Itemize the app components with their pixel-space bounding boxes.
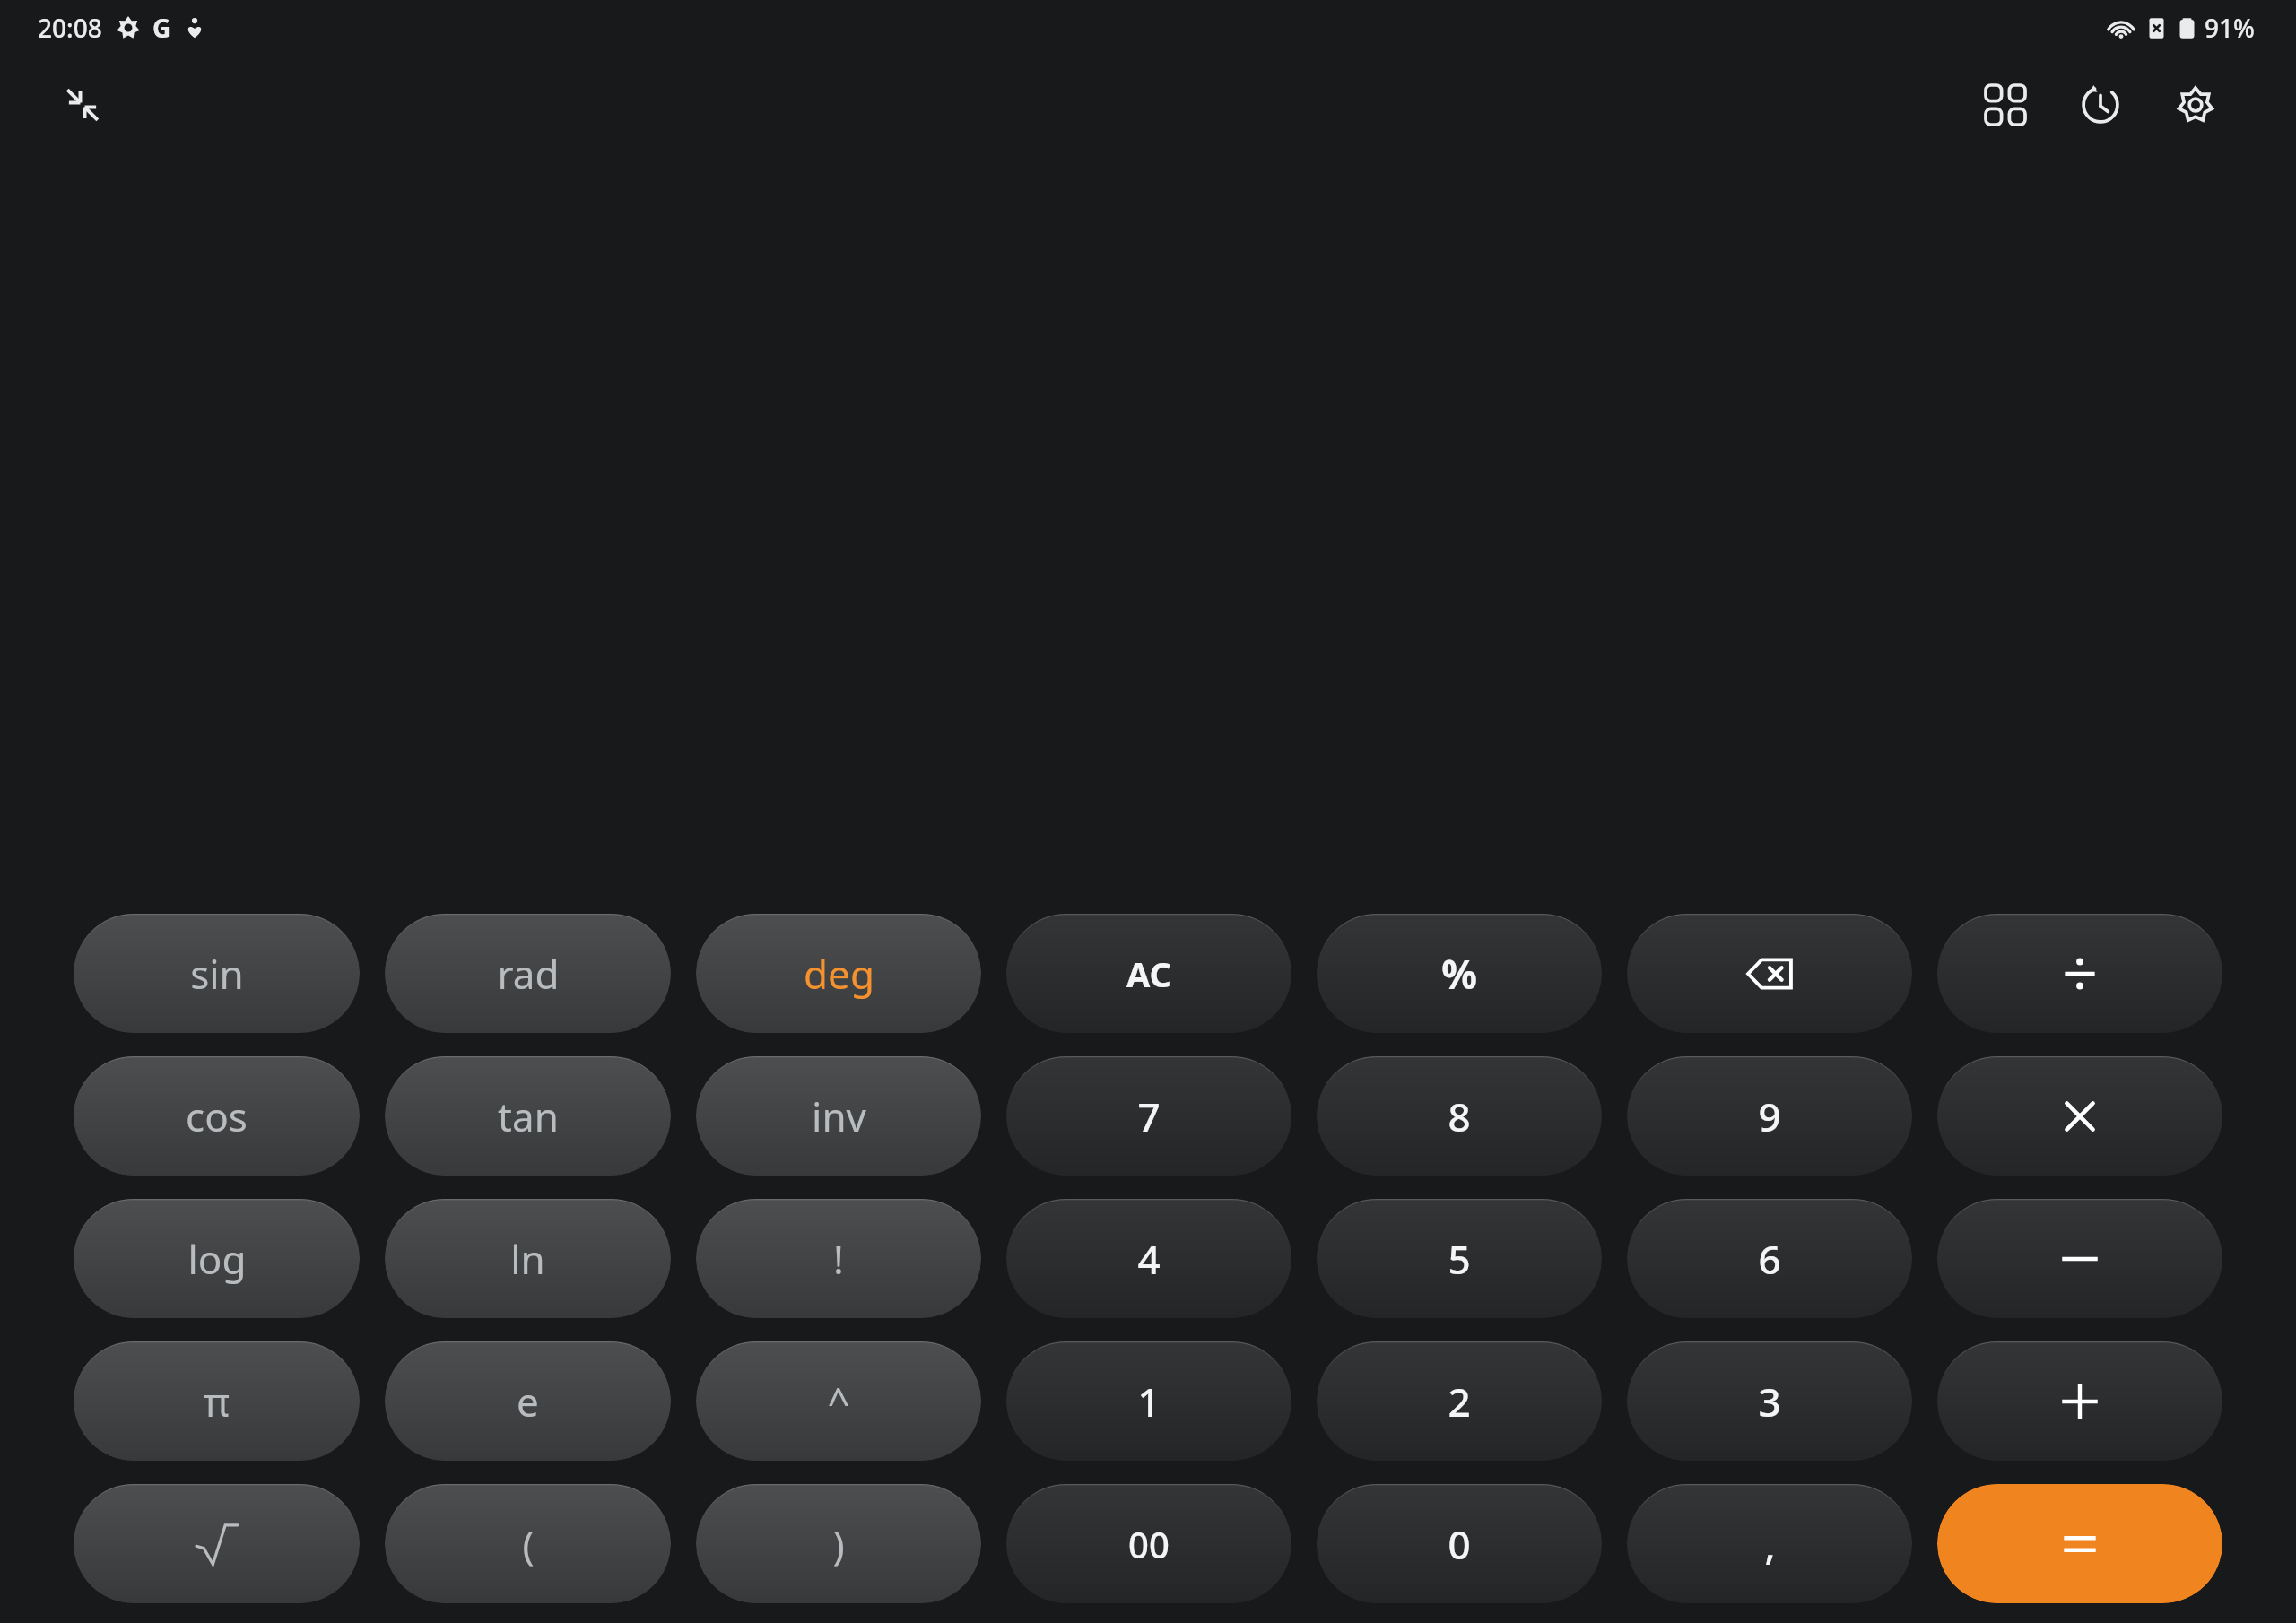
button[interactable]: ( [385,1484,671,1603]
button[interactable]: e [385,1341,671,1461]
button[interactable]: sin [74,914,360,1033]
button[interactable]: 7 [1006,1056,1291,1176]
button[interactable]: Scientific keypad [1970,69,2041,141]
staticText: ln [510,1232,545,1286]
staticText: ^ [827,1375,850,1428]
staticText: 4 [1137,1232,1161,1286]
staticText: 20:08 [38,11,102,45]
staticText: deg [804,947,874,1001]
button[interactable]: rad [385,914,671,1033]
button[interactable]: 2 [1317,1341,1602,1461]
staticText: cos [186,1089,248,1143]
staticText: log [187,1232,247,1286]
button[interactable]: Divide [1937,914,2222,1033]
button[interactable]: % [1317,914,1602,1033]
button[interactable]: Plus [1937,1341,2222,1461]
button[interactable]: , [1627,1484,1912,1603]
staticText: tan [498,1089,559,1143]
staticText: G [152,11,171,45]
staticText: 00 [1128,1520,1170,1568]
staticText: ) [832,1517,845,1571]
button[interactable]: Square root [74,1484,360,1603]
button[interactable]: 4 [1006,1199,1291,1318]
button[interactable]: Settings [2160,69,2231,141]
button[interactable]: 9 [1627,1056,1912,1176]
staticText: rad [497,947,560,1001]
button[interactable]: 0 [1317,1484,1602,1603]
staticText: 0 [1448,1517,1471,1571]
button[interactable]: log [74,1199,360,1318]
staticText: 1 [1137,1375,1161,1428]
button[interactable]: deg [696,914,981,1033]
button[interactable]: inv [696,1056,981,1176]
button[interactable]: 1 [1006,1341,1291,1461]
staticText: 9 [1758,1089,1781,1143]
staticText: 5 [1448,1232,1471,1286]
button[interactable]: Backspace [1627,914,1912,1033]
button[interactable]: Multiply [1937,1056,2222,1176]
button[interactable]: Minus [1937,1199,2222,1318]
button[interactable]: History [2065,69,2136,141]
button[interactable]: tan [385,1056,671,1176]
staticText: 8 [1448,1089,1471,1143]
staticText: ( [522,1517,535,1571]
button[interactable]: Equals [1937,1484,2222,1603]
staticText: 7 [1137,1089,1161,1143]
button[interactable]: AC [1006,914,1291,1033]
staticText: AC [1126,950,1171,997]
button[interactable]: 8 [1317,1056,1602,1176]
staticText: 2 [1448,1375,1471,1428]
button[interactable]: cos [74,1056,360,1176]
staticText: inv [812,1089,866,1143]
button[interactable]: 3 [1627,1341,1912,1461]
button[interactable]: Collapse [50,73,115,137]
staticText: 3 [1758,1375,1781,1428]
button[interactable]: ! [696,1199,981,1318]
staticText: ! [833,1232,844,1286]
button[interactable]: 00 [1006,1484,1291,1603]
button[interactable]: ) [696,1484,981,1603]
button[interactable]: ln [385,1199,671,1318]
staticText: sin [190,947,244,1001]
staticText: 6 [1758,1232,1781,1286]
button[interactable]: 5 [1317,1199,1602,1318]
staticText: π [204,1375,230,1428]
button[interactable]: ^ [696,1341,981,1461]
staticText: , [1764,1517,1776,1571]
staticText: e [517,1375,539,1428]
staticText: 91% [2205,11,2255,45]
button[interactable]: 6 [1627,1199,1912,1318]
staticText: % [1441,947,1477,1001]
button[interactable]: π [74,1341,360,1461]
